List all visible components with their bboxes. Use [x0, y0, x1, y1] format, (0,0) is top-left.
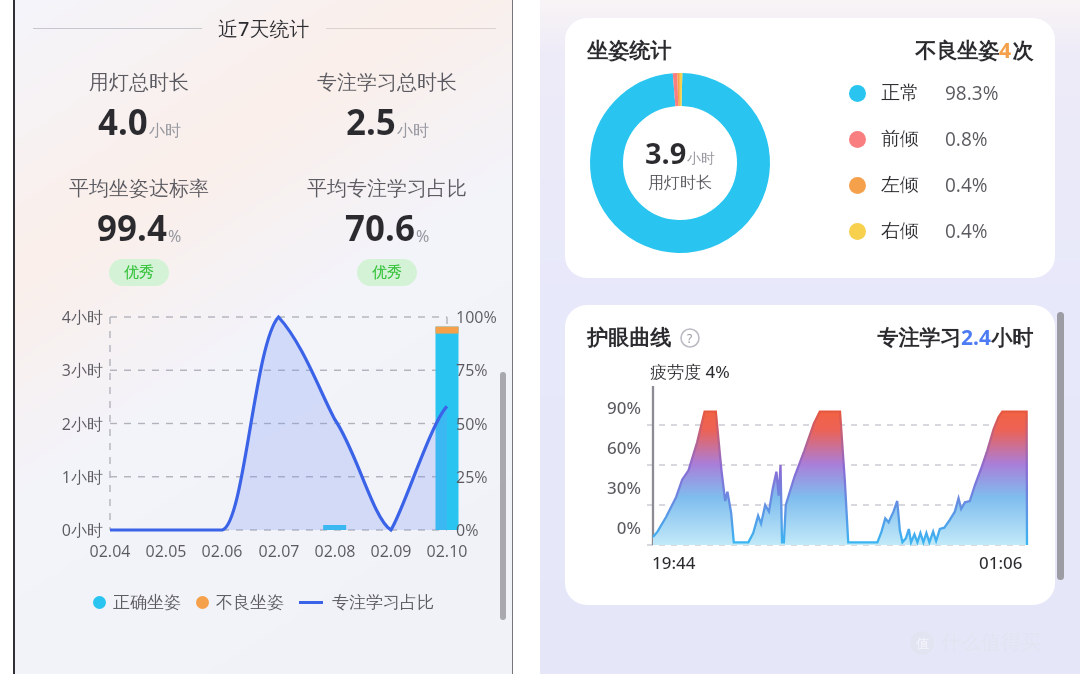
button[interactable]: 平均专注学习占比 [263, 176, 511, 286]
staticText: 护眼曲线 [587, 325, 671, 351]
button[interactable]: 帮助说明 [680, 328, 700, 348]
button[interactable]: 平均坐姿达标率 [15, 176, 263, 286]
staticText: 小时 [687, 150, 715, 168]
staticText: 4小时 [43, 306, 103, 328]
staticText: 02.10 [417, 540, 477, 562]
button[interactable]: 前倾 [849, 122, 988, 156]
staticText: 01:06 [979, 551, 1023, 574]
staticText: 30% [581, 476, 641, 499]
button[interactable]: 正常 [849, 76, 999, 110]
button[interactable]: 用灯总时长 [15, 70, 263, 146]
staticText: 正确坐姿 [113, 592, 181, 613]
staticText: 4.0 [98, 98, 148, 146]
staticText: 60% [581, 436, 641, 459]
staticText: 02.09 [361, 540, 421, 562]
staticText: 3.9 [645, 133, 687, 172]
staticText: 0.4% [945, 172, 988, 198]
staticText: 2.5 [346, 98, 396, 146]
staticText: 平均坐姿达标率 [69, 176, 209, 201]
staticText: 99.4 [97, 204, 167, 252]
staticText: 用灯总时长 [89, 70, 189, 95]
staticText: 0.4% [945, 218, 988, 244]
staticText: 02.07 [249, 540, 309, 562]
staticText: 0% [581, 516, 641, 539]
staticText: 70.6 [345, 204, 415, 252]
staticText: 前倾 [881, 127, 919, 151]
staticText: 0.8% [945, 126, 988, 152]
staticText: 优秀 [124, 263, 154, 282]
staticText: 02.04 [80, 540, 140, 562]
staticText: 3小时 [43, 359, 103, 381]
staticText: 小时 [397, 121, 429, 141]
button[interactable]: 专注学习总时长 [263, 70, 511, 146]
staticText: ? [687, 330, 693, 346]
staticText: 90% [581, 396, 641, 419]
staticText: % [416, 225, 430, 247]
staticText: 0小时 [43, 519, 103, 541]
staticText: 0% [456, 519, 479, 541]
staticText: 小时 [149, 121, 181, 141]
staticText: 25% [456, 466, 488, 488]
staticText: 优秀 [372, 263, 402, 282]
staticText: 平均专注学习占比 [307, 176, 467, 201]
staticText: 用灯时长 [648, 173, 712, 193]
staticText: 次 [1012, 38, 1033, 64]
staticText: 4 [999, 36, 1012, 65]
button[interactable]: 右倾 [849, 214, 988, 248]
staticText: 98.3% [945, 80, 999, 106]
staticText: 不良坐姿 [915, 38, 999, 64]
staticText: 75% [456, 359, 488, 381]
staticText: 02.06 [192, 540, 252, 562]
staticText: 坐姿统计 [587, 38, 671, 64]
staticText: 50% [456, 413, 488, 435]
staticText: 100% [456, 306, 497, 328]
staticText: % [168, 225, 182, 247]
staticText: 值 [916, 635, 929, 651]
staticText: 1小时 [43, 466, 103, 488]
staticText: 2小时 [43, 413, 103, 435]
staticText: 专注学习 [877, 325, 961, 351]
staticText: 什么值得买 [941, 630, 1041, 655]
staticText: 专注学习总时长 [317, 70, 457, 95]
staticText: 近7天统计 [218, 15, 310, 42]
staticText: 专注学习占比 [332, 592, 434, 613]
staticText: 02.05 [136, 540, 196, 562]
staticText: 不良坐姿 [216, 592, 284, 613]
staticText: 02.08 [305, 540, 365, 562]
staticText: 正常 [881, 81, 919, 105]
staticText: 19:44 [652, 551, 696, 574]
staticText: 左倾 [881, 173, 919, 197]
button[interactable]: 左倾 [849, 168, 988, 202]
staticText: 右倾 [881, 219, 919, 243]
staticText: 疲劳度 4% [650, 360, 730, 383]
staticText: 2.4 [961, 323, 991, 352]
staticText: 小时 [991, 325, 1033, 351]
